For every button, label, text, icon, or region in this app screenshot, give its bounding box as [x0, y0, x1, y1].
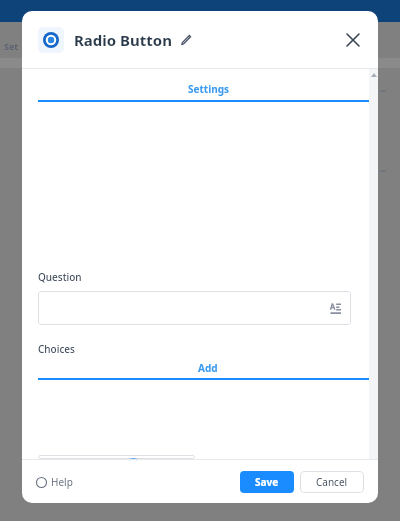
staticText: Choices [38, 342, 75, 356]
button[interactable]: Choice A [38, 455, 195, 459]
staticText: Set [4, 40, 19, 52]
staticText: Question [38, 270, 82, 284]
button[interactable]: Help [36, 475, 73, 489]
button[interactable]: Add [38, 361, 378, 380]
staticText: Add [198, 361, 218, 375]
staticText: Help [51, 475, 73, 489]
staticText: Cancel [316, 475, 348, 489]
button[interactable]: Rename [179, 33, 193, 47]
button[interactable]: Settings [38, 82, 378, 102]
staticText: Save [255, 475, 279, 489]
staticText: Settings [188, 82, 229, 96]
button[interactable]: Text formatting [38, 291, 351, 325]
button[interactable]: Text formatting [327, 300, 343, 316]
button[interactable]: Save [240, 471, 294, 493]
button[interactable]: Close [340, 27, 366, 53]
button[interactable]: Cancel [300, 471, 364, 493]
button[interactable]: Radio Button [38, 27, 193, 53]
staticText: Radio Button [74, 30, 172, 50]
